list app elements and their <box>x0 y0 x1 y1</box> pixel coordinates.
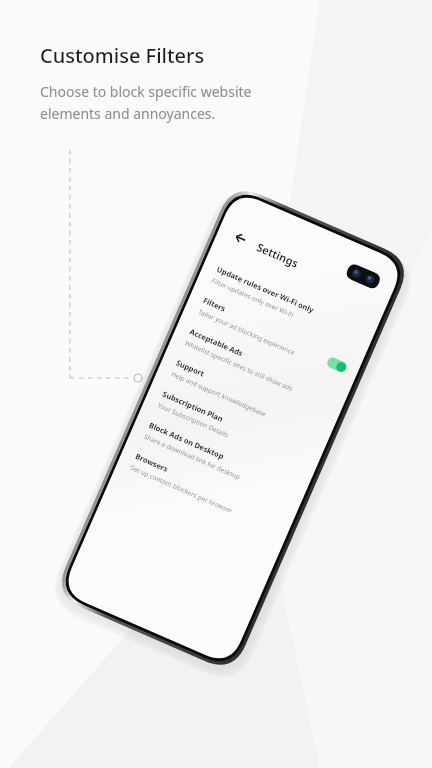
staticText: Whitelist specific sites to still show a… <box>183 338 294 393</box>
staticText: Block Ads on Desktop <box>147 420 226 461</box>
button[interactable]: Filters <box>182 284 364 388</box>
button[interactable]: Subscription Plan <box>141 378 323 482</box>
staticText: Choose to block specific website element… <box>40 82 252 123</box>
staticText: Filter updates only over Wi-Fi <box>210 276 296 319</box>
staticText: Subscription Plan <box>161 389 225 424</box>
staticText: Share a download link for desktop <box>143 432 242 481</box>
staticText: Browsers <box>134 451 170 474</box>
staticText: Help and support knowledgebase <box>170 369 268 419</box>
button[interactable]: Block Ads on Desktop <box>127 409 310 513</box>
button[interactable]: Acceptable Ads <box>168 315 350 420</box>
button[interactable]: Browsers <box>114 440 296 544</box>
staticText: Settings <box>254 239 301 271</box>
button[interactable]: Support <box>155 346 337 451</box>
staticText: Customise Filters <box>40 42 205 69</box>
staticText: Support <box>175 357 206 379</box>
staticText: Acceptable Ads <box>188 326 244 358</box>
staticText: Set up content blockers per browser <box>129 463 235 515</box>
staticText: Your Subscription Details <box>156 401 230 440</box>
button[interactable]: Update rules over Wi-Fi only <box>195 253 378 357</box>
button[interactable]: Back <box>228 226 252 250</box>
staticText: Filters <box>202 295 228 314</box>
button[interactable]: Filters enabled <box>325 356 348 374</box>
staticText: Update rules over Wi-Fi only <box>215 264 316 315</box>
staticText: Tailor your ad blocking experience <box>197 307 297 357</box>
